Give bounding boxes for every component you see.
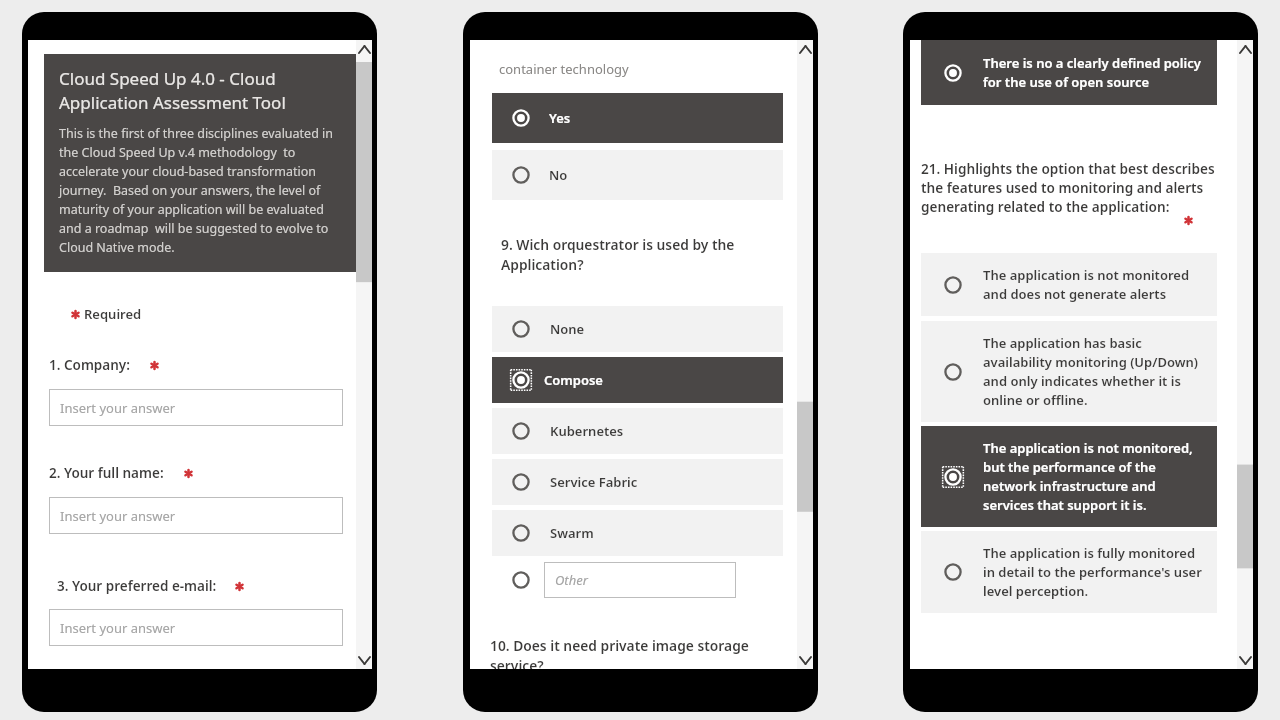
staticText: Insert your answer <box>60 507 176 525</box>
button[interactable]: Insert your answer <box>49 609 343 646</box>
button[interactable]: The application is not monitored, but th… <box>921 426 1217 527</box>
button[interactable]: Yes <box>492 93 783 143</box>
staticText: The application is not monitored and doe… <box>983 266 1207 303</box>
staticText: No <box>549 166 568 184</box>
button[interactable]: Insert your answer <box>49 389 343 426</box>
button[interactable]: None <box>492 306 783 352</box>
staticText: Swarm <box>550 524 594 542</box>
button[interactable]: The application is not monitored and doe… <box>921 253 1217 316</box>
button[interactable]: Scroll up <box>1237 40 1253 58</box>
staticText: 21. Highlights the option that best desc… <box>921 159 1226 216</box>
button[interactable]: Scroll down <box>797 651 813 669</box>
staticText: 9. Wich orquestrator is used by the Appl… <box>501 235 751 274</box>
staticText: None <box>550 320 585 338</box>
staticText: Yes <box>549 109 571 127</box>
button[interactable]: Scroll up <box>797 40 813 58</box>
staticText: The application is fully monitored in de… <box>983 544 1207 600</box>
button[interactable]: Swarm <box>492 510 783 556</box>
button[interactable]: The application has basic availability m… <box>921 321 1217 422</box>
staticText: Service Fabric <box>550 473 638 491</box>
staticText: Insert your answer <box>60 399 176 417</box>
staticText: 10. Does it need private image storage s… <box>490 636 760 669</box>
button[interactable]: Kubernetes <box>492 408 783 454</box>
button[interactable]: Compose <box>492 357 783 403</box>
staticText: The application has basic availability m… <box>983 334 1207 409</box>
staticText: 1. Company: <box>49 356 130 374</box>
staticText: Compose <box>544 371 603 389</box>
staticText: container technology <box>499 60 629 78</box>
button[interactable]: Scroll up <box>356 40 372 58</box>
button[interactable]: There is no a clearly defined policy for… <box>921 40 1217 105</box>
staticText: Required <box>84 305 142 323</box>
staticText: The application is not monitored, but th… <box>983 439 1207 514</box>
button[interactable]: Scroll down <box>356 651 372 669</box>
staticText: Insert your answer <box>60 619 176 637</box>
button[interactable]: Other <box>544 562 736 598</box>
staticText: 2. Your full name: <box>49 464 164 482</box>
staticText: 3. Your preferred e-mail: <box>57 577 217 595</box>
button[interactable]: Scroll down <box>1237 651 1253 669</box>
button[interactable]: Other <box>510 562 736 598</box>
staticText: There is no a clearly defined policy for… <box>983 54 1207 91</box>
staticText: Other <box>555 571 588 589</box>
button[interactable]: No <box>492 150 783 200</box>
button[interactable]: The application is fully monitored in de… <box>921 531 1217 613</box>
staticText: Kubernetes <box>550 422 624 440</box>
button[interactable]: Insert your answer <box>49 497 343 534</box>
staticText: This is the first of three disciplines e… <box>59 125 342 256</box>
button[interactable]: Service Fabric <box>492 459 783 505</box>
staticText: Cloud Speed Up 4.0 - Cloud Application A… <box>59 67 342 114</box>
